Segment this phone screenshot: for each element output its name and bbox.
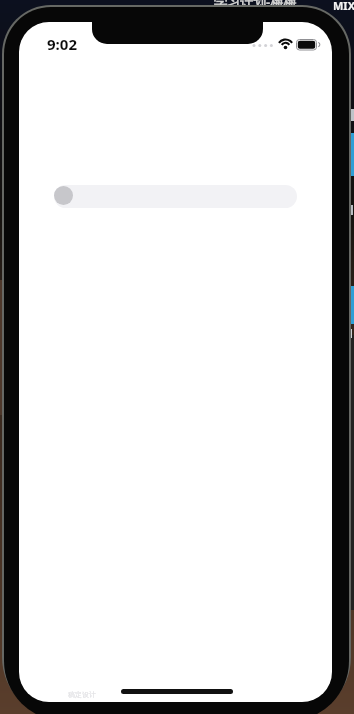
staticText: 学习计划-梅梅 bbox=[214, 0, 297, 11]
staticText: 稿定设计 bbox=[68, 690, 96, 699]
staticText: MIX bbox=[333, 0, 354, 13]
button[interactable] bbox=[54, 185, 297, 208]
staticText: 9:02 bbox=[47, 34, 77, 54]
button[interactable] bbox=[19, 22, 332, 702]
